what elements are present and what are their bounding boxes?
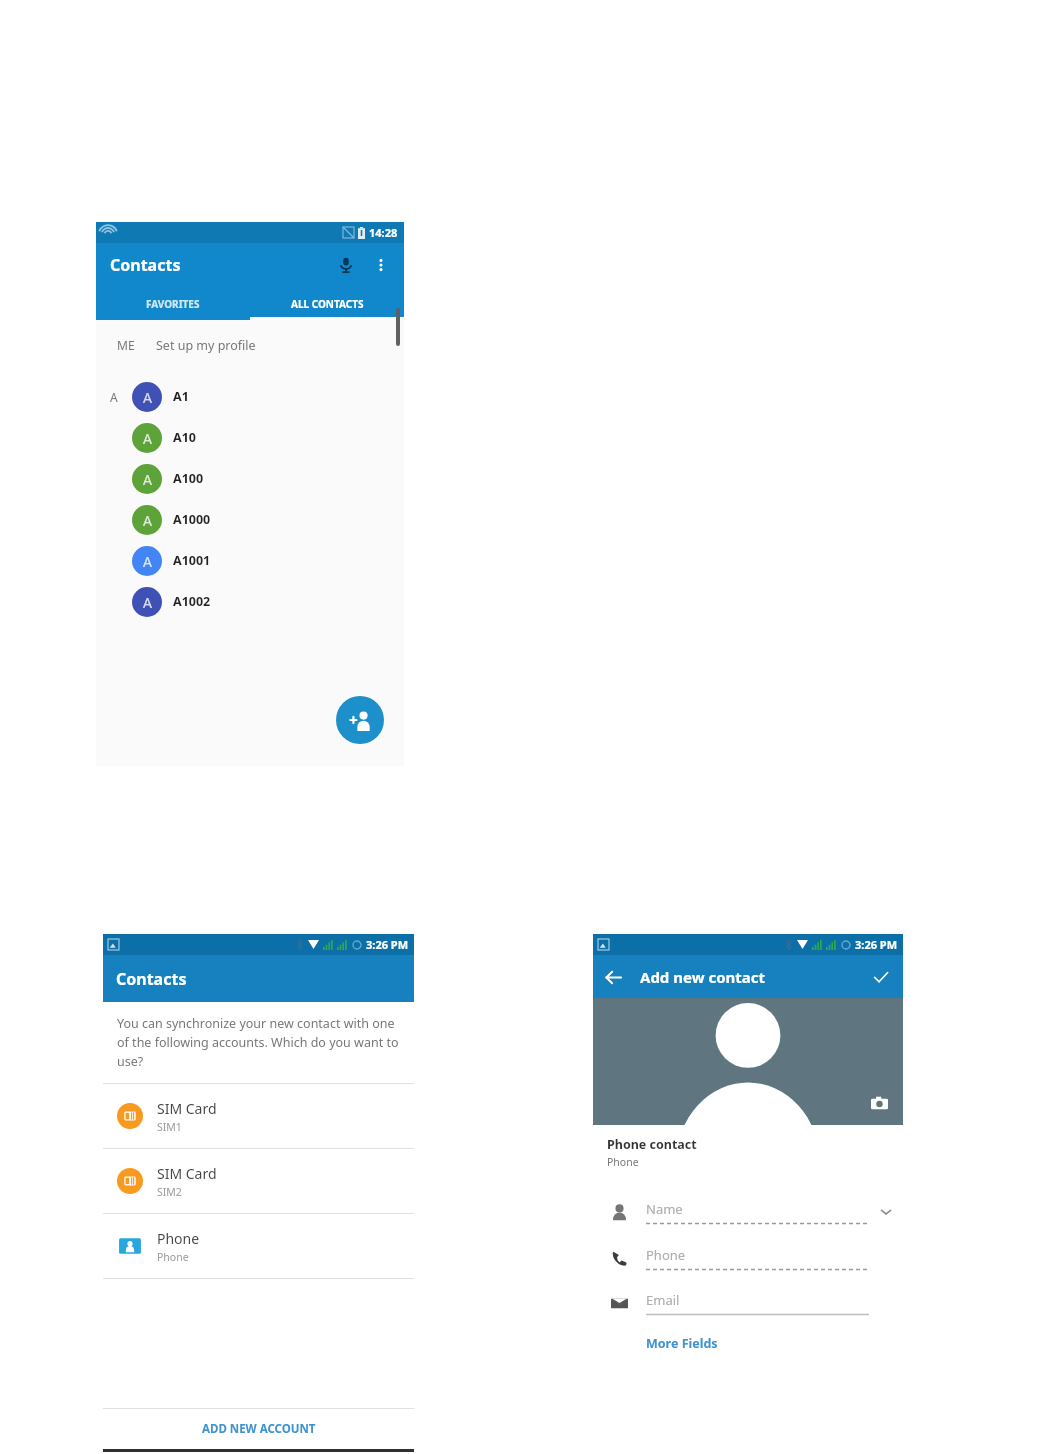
staticText: Email bbox=[646, 1291, 680, 1309]
button[interactable]: Phone bbox=[103, 1214, 414, 1278]
staticText: Phone bbox=[646, 1246, 686, 1264]
staticText: 3:26 PM bbox=[855, 937, 898, 952]
staticText: A bbox=[143, 552, 152, 571]
button[interactable]: Email bbox=[593, 1285, 903, 1321]
button[interactable]: Back bbox=[597, 961, 629, 993]
button[interactable]: A bbox=[96, 581, 404, 622]
staticText: Contacts bbox=[116, 968, 187, 990]
button[interactable]: A bbox=[96, 376, 404, 417]
staticText: More Fields bbox=[646, 1335, 718, 1352]
button[interactable]: More Fields bbox=[646, 1335, 718, 1352]
button[interactable]: Name bbox=[593, 1194, 903, 1230]
button[interactable]: Take photo bbox=[866, 1090, 892, 1116]
staticText: Add new contact bbox=[640, 967, 765, 987]
staticText: 3:26 PM bbox=[366, 937, 409, 952]
button[interactable]: A bbox=[96, 417, 404, 458]
staticText: A1 bbox=[173, 388, 189, 405]
staticText: A1002 bbox=[173, 593, 211, 610]
button[interactable]: Voice search bbox=[331, 250, 361, 280]
staticText: SIM1 bbox=[157, 1120, 182, 1134]
staticText: SIM Card bbox=[157, 1099, 217, 1118]
button[interactable]: A bbox=[96, 458, 404, 499]
button[interactable]: SIM Card bbox=[103, 1084, 414, 1148]
button[interactable]: More options bbox=[367, 251, 395, 279]
staticText: A1001 bbox=[173, 552, 211, 569]
staticText: SIM2 bbox=[157, 1185, 182, 1199]
button[interactable]: ALL CONTACTS bbox=[250, 287, 404, 320]
staticText: ALL CONTACTS bbox=[291, 297, 364, 311]
staticText: You can synchronize your new contact wit… bbox=[117, 1015, 400, 1070]
button[interactable]: Phone bbox=[593, 1240, 903, 1276]
staticText: A10 bbox=[173, 429, 196, 446]
staticText: ADD NEW ACCOUNT bbox=[202, 1421, 316, 1437]
staticText: Name bbox=[646, 1200, 683, 1218]
staticText: A bbox=[143, 593, 152, 612]
staticText: Phone bbox=[157, 1250, 189, 1264]
staticText: ME bbox=[117, 337, 135, 353]
staticText: A bbox=[143, 429, 152, 448]
staticText: A100 bbox=[173, 470, 204, 487]
button[interactable]: ADD NEW ACCOUNT bbox=[103, 1409, 414, 1449]
button[interactable]: Save bbox=[866, 962, 896, 992]
button[interactable]: ME bbox=[96, 326, 404, 364]
staticText: A1000 bbox=[173, 511, 211, 528]
staticText: FAVORITES bbox=[146, 297, 200, 311]
staticText: A bbox=[143, 511, 152, 530]
button[interactable]: FAVORITES bbox=[96, 287, 250, 320]
button[interactable]: A bbox=[96, 499, 404, 540]
button[interactable]: Add contact bbox=[336, 696, 384, 744]
staticText: A bbox=[143, 388, 152, 407]
staticText: A bbox=[110, 389, 118, 405]
button[interactable]: A bbox=[96, 540, 404, 581]
staticText: Phone bbox=[157, 1229, 200, 1248]
button[interactable]: SIM Card bbox=[103, 1149, 414, 1213]
staticText: A bbox=[143, 470, 152, 489]
staticText: SIM Card bbox=[157, 1164, 217, 1183]
staticText: 14:28 bbox=[369, 225, 398, 240]
staticText: Set up my profile bbox=[156, 337, 256, 354]
staticText: Contacts bbox=[110, 254, 181, 276]
staticText: Phone bbox=[607, 1155, 639, 1169]
staticText: Phone contact bbox=[607, 1136, 697, 1153]
